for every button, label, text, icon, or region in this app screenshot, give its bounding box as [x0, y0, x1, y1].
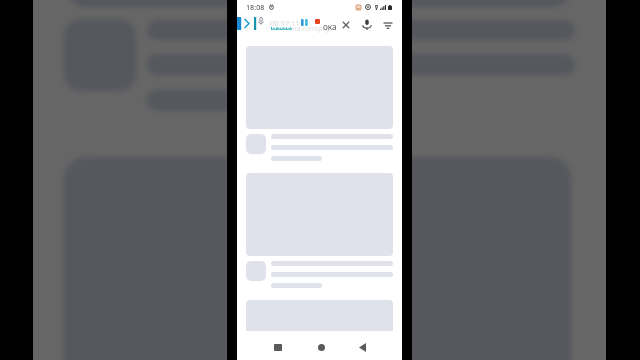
button[interactable]: Recents — [270, 339, 286, 355]
button[interactable]: Home — [313, 339, 329, 355]
button[interactable]: Filter — [383, 20, 393, 30]
button[interactable] — [246, 300, 393, 360]
button[interactable]: Voice search — [362, 19, 372, 30]
button[interactable]: Close — [341, 20, 351, 30]
staticText: ока — [323, 21, 337, 32]
button[interactable]: Back — [354, 339, 370, 355]
staticText: 00:07:11 — [270, 18, 300, 28]
staticText: 18:08 — [246, 2, 265, 12]
staticText: на пятёрку — [292, 23, 330, 33]
